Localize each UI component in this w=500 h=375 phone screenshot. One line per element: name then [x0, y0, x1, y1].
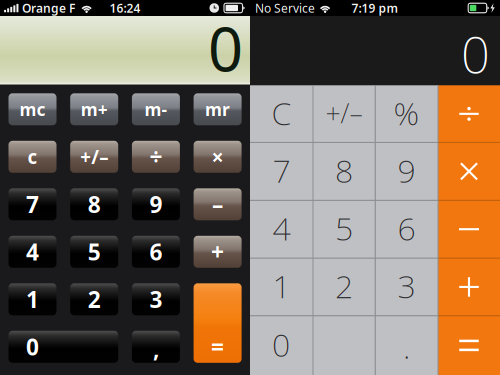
staticText: %	[394, 92, 420, 134]
staticText: C	[271, 92, 291, 134]
staticText: =	[211, 332, 224, 362]
button[interactable]: 1	[8, 283, 56, 315]
staticText: 4	[272, 207, 290, 249]
staticText: 3	[149, 284, 162, 314]
button[interactable]: 3	[375, 258, 438, 316]
staticText: 3	[398, 265, 416, 307]
button[interactable]: –	[194, 188, 242, 220]
button[interactable]: 4	[250, 200, 313, 258]
staticText: 7	[272, 149, 290, 192]
staticText: 1	[272, 265, 290, 307]
button[interactable]: 0	[250, 316, 375, 375]
staticText: ×	[212, 143, 224, 171]
button[interactable]: Plus	[438, 258, 500, 316]
button[interactable]: mr	[194, 93, 242, 125]
button[interactable]: 9	[132, 188, 180, 220]
staticText: 4	[26, 237, 39, 267]
button[interactable]: Equals	[438, 316, 500, 375]
button[interactable]: 9	[375, 142, 438, 200]
staticText: 0	[208, 7, 243, 88]
button[interactable]: +/–	[313, 85, 375, 142]
button[interactable]: 6	[132, 236, 180, 268]
staticText: 0	[461, 20, 490, 87]
button[interactable]: 7	[250, 142, 313, 200]
button[interactable]: %	[375, 85, 438, 142]
staticText: 5	[88, 237, 101, 267]
staticText: 1	[26, 284, 39, 314]
staticText: 2	[88, 284, 101, 314]
staticText: +/–	[80, 144, 108, 169]
button[interactable]: 5	[70, 236, 118, 268]
staticText: m+	[81, 98, 108, 121]
button[interactable]: =	[194, 283, 242, 363]
button[interactable]: +	[194, 236, 242, 268]
staticText: 9	[149, 189, 162, 219]
staticText: ,	[153, 334, 159, 364]
button[interactable]: c	[8, 141, 56, 173]
button[interactable]: Minus	[438, 200, 500, 258]
button[interactable]: 7	[8, 188, 56, 220]
staticText: mr	[205, 98, 230, 121]
staticText: m-	[144, 98, 167, 121]
button[interactable]: Divide	[438, 85, 500, 142]
staticText: 0	[26, 332, 39, 362]
button[interactable]: m+	[70, 93, 118, 125]
button[interactable]: ÷	[132, 141, 180, 173]
button[interactable]: 2	[313, 258, 375, 316]
button[interactable]: 8	[70, 188, 118, 220]
button[interactable]: ,	[132, 331, 180, 363]
button[interactable]: 1	[250, 258, 313, 316]
button[interactable]: .	[375, 316, 438, 375]
staticText: 6	[149, 237, 162, 267]
staticText: 0	[272, 323, 290, 366]
button[interactable]: +/–	[70, 141, 118, 173]
staticText: 7	[26, 189, 39, 219]
staticText: 9	[398, 149, 416, 192]
button[interactable]: 3	[132, 283, 180, 315]
staticText: ÷	[149, 142, 162, 172]
button[interactable]: m-	[132, 93, 180, 125]
staticText: 8	[335, 149, 353, 192]
button[interactable]: 8	[313, 142, 375, 200]
staticText: .	[403, 325, 410, 368]
staticText: +	[211, 237, 224, 267]
staticText: 16:24	[109, 0, 140, 16]
staticText: 8	[88, 189, 101, 219]
staticText: 2	[335, 265, 353, 307]
staticText: mc	[19, 98, 45, 121]
button[interactable]: ×	[194, 141, 242, 173]
button[interactable]: 4	[8, 236, 56, 268]
staticText: No Service	[255, 0, 315, 16]
button[interactable]: Multiply	[438, 142, 500, 200]
staticText: c	[27, 144, 37, 169]
button[interactable]: 2	[70, 283, 118, 315]
staticText: 6	[398, 207, 416, 249]
staticText: –	[212, 189, 223, 219]
staticText: 7:19 pm	[351, 0, 398, 16]
button[interactable]: 6	[375, 200, 438, 258]
staticText: 5	[335, 207, 353, 249]
staticText: Orange F	[22, 0, 75, 16]
button[interactable]: 5	[313, 200, 375, 258]
button[interactable]: 0	[8, 331, 118, 363]
button[interactable]: mc	[8, 93, 56, 125]
staticText: +/–	[326, 95, 363, 130]
button[interactable]: C	[250, 85, 313, 142]
